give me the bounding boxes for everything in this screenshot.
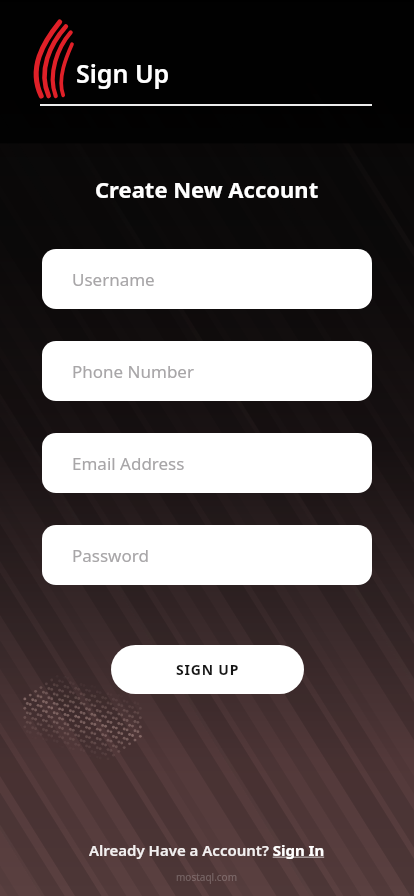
button[interactable]: Phone Number — [42, 341, 372, 401]
staticText: Username — [72, 268, 155, 291]
staticText: Create New Account — [95, 174, 319, 204]
staticText: Already Have a Account? Sign In — [89, 840, 325, 860]
staticText: Sign Up — [76, 56, 170, 90]
button[interactable]: Email Address — [42, 433, 372, 493]
staticText: SIGN UP — [176, 660, 240, 679]
button[interactable]: Password — [42, 525, 372, 585]
staticText: Password — [72, 544, 149, 567]
button[interactable]: SIGN UP — [111, 645, 304, 694]
button[interactable]: Username — [42, 249, 372, 309]
staticText: mostaql.com — [176, 870, 238, 884]
button[interactable]: Already Have a Account? Sign In — [89, 840, 325, 860]
staticText: Email Address — [72, 452, 185, 475]
staticText: Phone Number — [72, 360, 194, 383]
other: App logo — [28, 22, 72, 96]
